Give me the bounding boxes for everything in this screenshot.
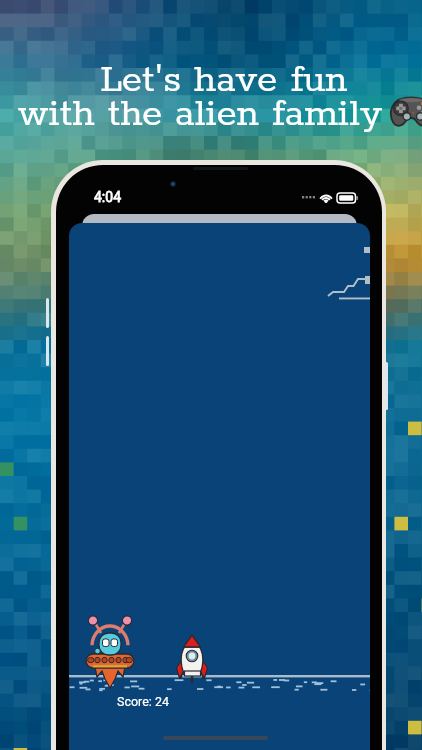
staticText: Score: 24 <box>117 694 170 709</box>
staticText: with the alien family <box>18 90 383 138</box>
staticText: Let's have fun <box>100 56 348 104</box>
staticText: 4:04 <box>94 189 121 205</box>
